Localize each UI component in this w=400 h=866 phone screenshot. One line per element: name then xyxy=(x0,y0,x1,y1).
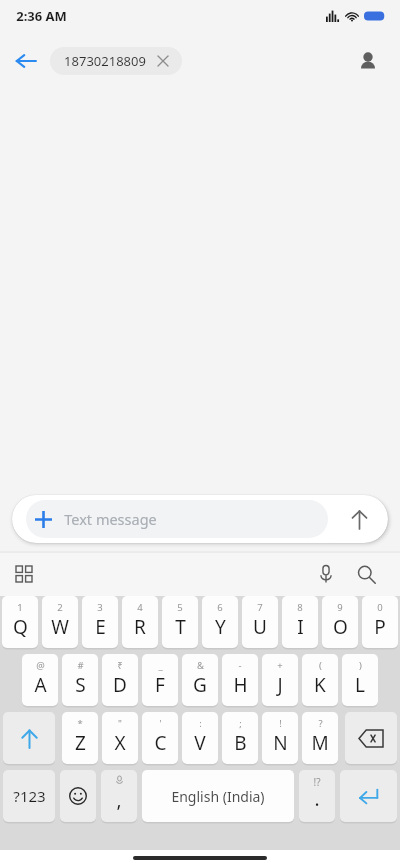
staticText: A xyxy=(34,672,47,698)
button[interactable]: 1 xyxy=(2,596,38,648)
button[interactable]: 18730218809 xyxy=(50,47,182,75)
staticText: P xyxy=(374,614,386,640)
button[interactable]: Contact details xyxy=(348,41,388,81)
staticText: # xyxy=(77,659,84,672)
button[interactable]: English (India) xyxy=(142,770,294,822)
staticText: 7 xyxy=(257,601,263,614)
staticText: ( xyxy=(319,659,322,672)
button[interactable]: Back xyxy=(6,41,46,81)
staticText: L xyxy=(355,672,365,698)
staticText: " xyxy=(118,717,122,730)
staticText: O xyxy=(333,614,348,640)
staticText: ' xyxy=(159,717,162,730)
staticText: @ xyxy=(36,659,45,672)
staticText: 3 xyxy=(97,601,103,614)
button[interactable]: ; xyxy=(222,712,258,764)
button[interactable]: Emoji xyxy=(60,770,96,822)
staticText: F xyxy=(155,672,165,698)
staticText: N xyxy=(273,730,288,756)
staticText: _ xyxy=(158,659,163,672)
button[interactable]: " xyxy=(102,712,138,764)
staticText: 2:36 AM xyxy=(16,7,67,25)
staticText: R xyxy=(134,614,146,640)
staticText: T xyxy=(175,614,186,640)
button[interactable]: # xyxy=(62,654,98,706)
button[interactable]: _ xyxy=(142,654,178,706)
staticText: * xyxy=(77,717,83,730)
button[interactable]: 8 xyxy=(282,596,318,648)
button[interactable]: 7 xyxy=(242,596,278,648)
button[interactable]: Keyboard layouts xyxy=(6,556,42,592)
staticText: I xyxy=(297,614,304,640)
staticText: 9 xyxy=(337,601,343,614)
staticText: H xyxy=(233,672,248,698)
staticText: English (India) xyxy=(171,787,265,806)
staticText: : xyxy=(199,717,202,730)
staticText: G xyxy=(193,672,207,698)
staticText: U xyxy=(253,614,267,640)
staticText: + xyxy=(277,659,283,672)
staticText: 4 xyxy=(137,601,143,614)
staticText: K xyxy=(314,672,326,698)
staticText: 2 xyxy=(57,601,63,614)
staticText: X xyxy=(114,730,126,756)
staticText: Y xyxy=(215,614,226,640)
button[interactable]: 2 xyxy=(42,596,78,648)
staticText: ; xyxy=(239,717,242,730)
button[interactable]: ' xyxy=(142,712,178,764)
button[interactable]: 4 xyxy=(122,596,158,648)
button[interactable]: Text message xyxy=(26,500,328,538)
button[interactable]: * xyxy=(62,712,98,764)
staticText: 18730218809 xyxy=(64,52,146,70)
staticText: 1 xyxy=(17,601,23,614)
button[interactable]: Shift xyxy=(3,712,55,764)
button[interactable]: ) xyxy=(342,654,378,706)
button[interactable]: Search xyxy=(346,554,386,594)
staticText: , xyxy=(116,787,122,813)
button[interactable]: ( xyxy=(302,654,338,706)
button[interactable]: Voice input xyxy=(306,554,346,594)
staticText: 0 xyxy=(377,601,383,614)
button[interactable]: ?123 xyxy=(3,770,55,822)
staticText: C xyxy=(154,730,167,756)
staticText: V xyxy=(194,730,206,756)
button[interactable]: 9 xyxy=(322,596,358,648)
button[interactable]: - xyxy=(222,654,258,706)
button[interactable]: @ xyxy=(22,654,58,706)
button[interactable]: ₹ xyxy=(102,654,138,706)
button[interactable]: ! xyxy=(262,712,298,764)
staticText: D xyxy=(113,672,127,698)
button[interactable]: Enter xyxy=(340,770,397,822)
staticText: & xyxy=(197,659,204,672)
button[interactable]: + xyxy=(262,654,298,706)
staticText: ₹ xyxy=(117,659,123,672)
staticText: !? xyxy=(313,775,321,789)
button[interactable]: Send xyxy=(338,498,380,540)
staticText: M xyxy=(311,730,329,756)
staticText: Q xyxy=(13,614,28,640)
staticText: B xyxy=(234,730,247,756)
staticText: . xyxy=(314,786,320,812)
staticText: ?123 xyxy=(13,786,46,806)
button[interactable]: 3 xyxy=(82,596,118,648)
button[interactable]: & xyxy=(182,654,218,706)
button[interactable]: !? xyxy=(299,770,335,822)
staticText: E xyxy=(95,614,106,640)
button[interactable]: 0 xyxy=(362,596,398,648)
staticText: - xyxy=(238,659,242,672)
staticText: 8 xyxy=(297,601,303,614)
button[interactable]: , xyxy=(101,770,137,822)
staticText: Z xyxy=(75,730,86,756)
staticText: Text message xyxy=(64,509,157,529)
staticText: S xyxy=(75,672,86,698)
button[interactable]: 6 xyxy=(202,596,238,648)
staticText: 6 xyxy=(217,601,223,614)
staticText: J xyxy=(277,672,283,698)
staticText: ! xyxy=(279,717,282,730)
staticText: ? xyxy=(318,717,323,730)
staticText: ) xyxy=(359,659,362,672)
button[interactable]: ? xyxy=(302,712,338,764)
button[interactable]: : xyxy=(182,712,218,764)
button[interactable]: Backspace xyxy=(345,712,397,764)
button[interactable]: 5 xyxy=(162,596,198,648)
